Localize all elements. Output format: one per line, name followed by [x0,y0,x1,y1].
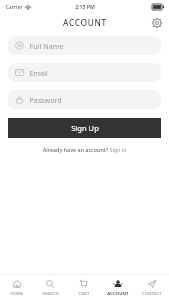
button[interactable]: Sign in [109,146,127,153]
staticText: Email [29,68,48,78]
button[interactable]: CONTACT [135,275,169,300]
staticText: Full Name [29,41,64,51]
button[interactable]: Settings [148,14,165,31]
button[interactable]: Sign Up [8,118,161,138]
button[interactable]: ACCOUNT [101,275,135,300]
button[interactable]: HOME [0,275,33,300]
staticText: Password [29,95,62,105]
button[interactable]: Password [8,90,161,109]
staticText: HOME [10,291,24,297]
staticText: CONTACT [142,291,162,297]
staticText: ACCOUNT [107,291,129,297]
staticText: CART [78,291,90,297]
staticText: 2:15 PM [75,3,95,10]
staticText: ACCOUNT [63,17,107,28]
button[interactable]: Full Name [8,36,161,55]
button[interactable]: SEARCH [33,275,67,300]
staticText: Already have an account? [42,146,109,153]
staticText: SEARCH [42,291,59,297]
staticText: Sign Up [71,123,99,133]
staticText: Sign in [109,146,127,153]
button[interactable]: Email [8,63,161,82]
button[interactable]: CART [67,275,101,300]
staticText: Carrier [5,3,23,10]
